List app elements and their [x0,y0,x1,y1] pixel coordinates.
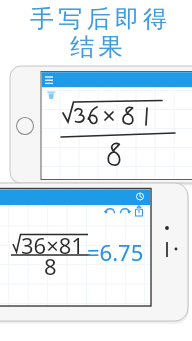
staticText: =6.75 [87,237,144,267]
staticText: 结果 [70,32,127,62]
staticText: 手写后即得 [28,4,169,34]
staticText: 36×81 [21,230,84,260]
staticText: 8 [44,251,57,281]
